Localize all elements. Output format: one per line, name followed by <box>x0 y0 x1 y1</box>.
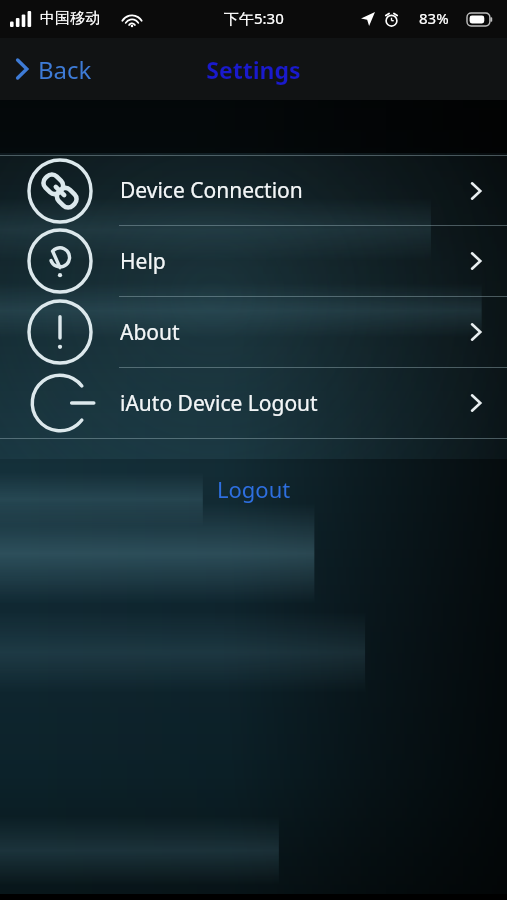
staticText: Device Connection <box>120 176 303 205</box>
staticText: Logout <box>217 474 291 504</box>
staticText: Help <box>120 247 166 276</box>
staticText: iAuto Device Logout <box>120 389 318 418</box>
staticText: 下午5:30 <box>224 8 284 28</box>
button[interactable]: iAuto Device Logout <box>0 368 507 438</box>
button[interactable]: Help <box>0 226 507 296</box>
other: Back <box>12 55 32 83</box>
button[interactable]: About <box>0 297 507 367</box>
staticText: 中国移动 <box>40 9 100 28</box>
button[interactable]: Back <box>12 45 92 93</box>
button[interactable]: Device Connection <box>0 156 507 225</box>
button[interactable]: Logout <box>217 474 291 504</box>
staticText: About <box>120 318 180 347</box>
staticText: Back <box>38 53 92 86</box>
staticText: Settings <box>206 54 301 85</box>
staticText: 83% <box>419 8 449 28</box>
